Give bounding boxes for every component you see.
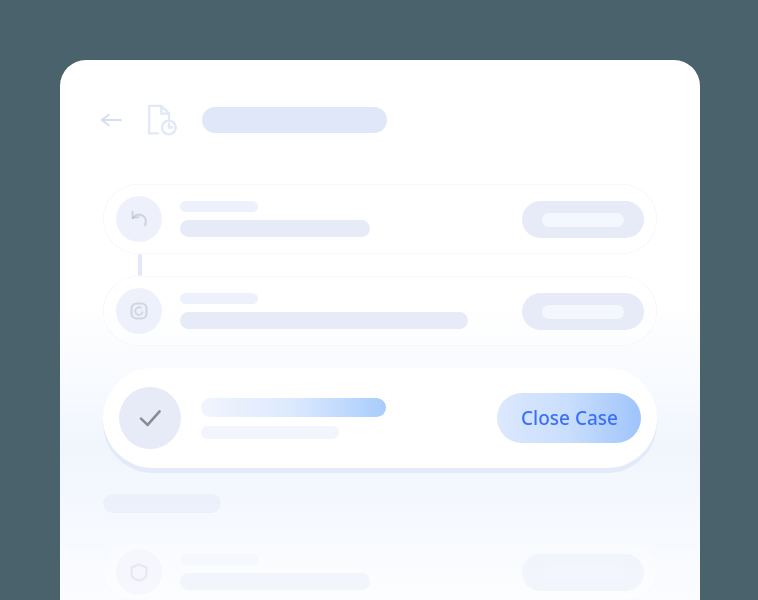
- button[interactable]: Close Case: [497, 393, 641, 443]
- button[interactable]: Action: [103, 543, 657, 600]
- button[interactable]: Case history: [144, 102, 180, 138]
- button[interactable]: Action: [103, 184, 657, 254]
- button[interactable]: Action: [522, 293, 644, 330]
- button[interactable]: Action: [103, 276, 657, 346]
- button[interactable]: Back: [94, 103, 128, 137]
- staticText: Close Case: [521, 405, 618, 431]
- button[interactable]: Close Case: [103, 368, 657, 468]
- button[interactable]: Action: [522, 201, 644, 238]
